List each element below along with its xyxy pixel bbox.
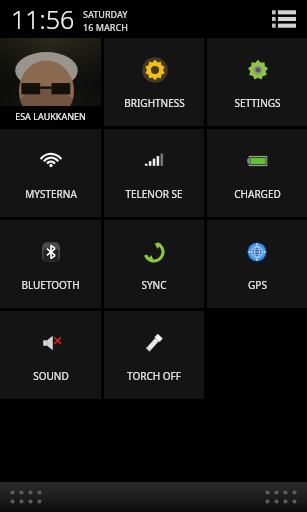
button[interactable]: BRIGHTNESS	[104, 38, 204, 126]
staticText: MYSTERNA	[25, 187, 77, 201]
button[interactable]: SYNC	[104, 220, 204, 308]
staticText: CHARGED	[234, 187, 281, 201]
staticText: TORCH OFF	[127, 369, 181, 383]
button[interactable]: App drawer right	[263, 488, 299, 506]
button[interactable]: BLUETOOTH	[0, 220, 101, 308]
button[interactable]: SOUND	[0, 311, 101, 399]
button[interactable]: ESA LAUKKANEN	[0, 38, 101, 126]
button[interactable]: TELENOR SE	[104, 129, 204, 217]
staticText: 11:56	[11, 2, 75, 36]
staticText: SATURDAY	[83, 8, 128, 20]
button[interactable]: Menu	[269, 4, 299, 34]
button[interactable]: CHARGED	[207, 129, 307, 217]
staticText: SETTINGS	[234, 96, 281, 110]
staticText: TELENOR SE	[125, 187, 183, 201]
staticText: SYNC	[141, 278, 167, 292]
staticText: GPS	[248, 278, 267, 292]
staticText: 16 MARCH	[83, 21, 128, 33]
staticText: ESA LAUKKANEN	[15, 110, 86, 122]
button[interactable]: MYSTERNA	[0, 129, 101, 217]
button[interactable]: SETTINGS	[207, 38, 307, 126]
button[interactable]: GPS	[207, 220, 307, 308]
staticText: BLUETOOTH	[21, 278, 80, 292]
staticText: BRIGHTNESS	[124, 96, 185, 110]
button[interactable]: App drawer left	[8, 488, 44, 506]
button[interactable]: TORCH OFF	[104, 311, 204, 399]
staticText: SOUND	[33, 369, 69, 383]
